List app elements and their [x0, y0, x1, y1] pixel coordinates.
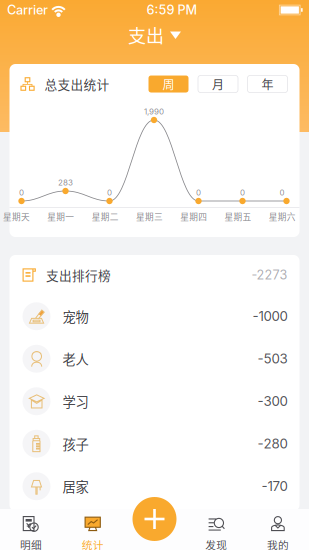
staticText: 1,990 [144, 107, 164, 116]
staticText: 明细 [20, 537, 42, 550]
staticText: -280 [257, 436, 287, 452]
staticText: 星期五 [225, 210, 252, 223]
button[interactable]: 年 [247, 75, 287, 92]
staticText: 居家 [62, 477, 88, 496]
button[interactable]: 老人 [9, 337, 299, 380]
staticText: 星期天 [3, 210, 30, 223]
staticText: -170 [261, 478, 287, 494]
button[interactable]: 学习 [9, 380, 299, 422]
staticText: 0 [107, 188, 112, 197]
staticText: -1000 [252, 308, 287, 324]
staticText: 年 [261, 75, 273, 93]
staticText: 0 [279, 188, 284, 197]
staticText: 283 [58, 178, 73, 187]
staticText: 星期四 [180, 210, 207, 223]
button[interactable]: 明细 [0, 509, 62, 550]
staticText: -300 [257, 393, 287, 409]
staticText: 0 [19, 188, 24, 197]
staticText: 老人 [62, 349, 88, 368]
staticText: 0 [196, 188, 201, 197]
button[interactable]: 支出 [0, 20, 309, 50]
staticText: 孩子 [62, 434, 88, 453]
staticText: 0 [240, 188, 245, 197]
staticText: 6:59 PM [146, 2, 197, 18]
button[interactable]: 居家 [9, 465, 299, 507]
staticText: 我的 [267, 537, 289, 550]
staticText: 发现 [205, 537, 227, 550]
button[interactable]: Add transaction [132, 497, 176, 541]
staticText: 学习 [62, 392, 88, 411]
staticText: 星期一 [47, 210, 74, 223]
button[interactable]: 我的 [247, 509, 309, 550]
button[interactable]: 发现 [185, 509, 247, 550]
button[interactable]: 统计 [62, 509, 124, 550]
staticText: 支出 [128, 22, 164, 48]
staticText: 总支出统计 [44, 75, 109, 93]
staticText: 支出排行榜 [46, 266, 111, 284]
button[interactable]: 孩子 [9, 422, 299, 465]
staticText: -503 [257, 351, 287, 367]
button[interactable]: 月 [198, 75, 238, 92]
button[interactable]: 宠物 [9, 295, 299, 337]
staticText: 周 [162, 75, 174, 93]
staticText: -2273 [251, 267, 287, 283]
staticText: Carrier [7, 2, 48, 18]
staticText: 月 [212, 75, 224, 93]
staticText: 星期六 [269, 210, 296, 223]
staticText: 星期三 [136, 210, 163, 223]
button[interactable]: 周 [148, 75, 188, 92]
staticText: 宠物 [62, 307, 88, 326]
staticText: 星期二 [92, 210, 119, 223]
staticText: 统计 [82, 537, 104, 550]
